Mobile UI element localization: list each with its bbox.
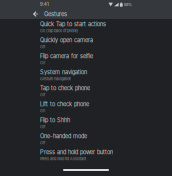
staticText: On (40, 60, 45, 65)
staticText: One-handed mode (40, 133, 87, 140)
staticText: Off (40, 92, 45, 97)
staticText: Gestures (44, 10, 67, 18)
button[interactable]: Press and hold power button (0, 147, 172, 163)
button[interactable]: Flip to Shhh (0, 115, 172, 131)
staticText: Tap to check phone (40, 85, 90, 92)
staticText: Press and hold power button (40, 149, 113, 156)
button[interactable]: One-handed mode (0, 131, 172, 147)
staticText: 9:41 (40, 2, 49, 7)
staticText: System navigation (40, 69, 87, 76)
button[interactable]: Quickly open camera (0, 35, 172, 51)
button[interactable]: System navigation (0, 67, 172, 83)
button[interactable]: Tap to check phone (0, 83, 172, 99)
staticText: Quickly open camera (40, 37, 93, 44)
staticText: 93% (124, 2, 132, 7)
staticText: Press and hold for Assistant (40, 156, 86, 161)
staticText: Flip camera for selfie (40, 53, 93, 60)
staticText: Quick Tap to start actions (40, 21, 106, 28)
staticText: Off (40, 44, 45, 49)
staticText: On (40, 108, 45, 113)
staticText: Off (40, 140, 45, 145)
button[interactable]: Quick Tap to start actions (0, 19, 172, 35)
button[interactable]: Flip camera for selfie (0, 51, 172, 67)
button[interactable]: Lift to check phone (0, 99, 172, 115)
staticText: Gesture navigation (40, 76, 71, 81)
button[interactable]: Back (32, 9, 39, 18)
staticText: Off (40, 124, 45, 129)
staticText: Flip to Shhh (40, 117, 70, 124)
staticText: Lift to check phone (40, 101, 89, 108)
staticText: On (Tap back of phone) (40, 28, 78, 33)
